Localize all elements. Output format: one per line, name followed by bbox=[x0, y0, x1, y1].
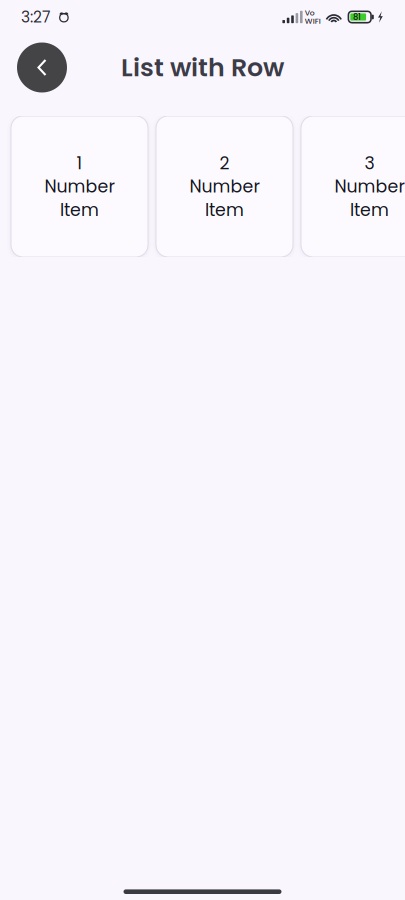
staticText: List with Row bbox=[121, 50, 284, 85]
staticText: WiFi bbox=[305, 16, 321, 27]
button[interactable]: Back bbox=[17, 42, 67, 92]
staticText: Item bbox=[350, 198, 389, 222]
staticText: Number bbox=[44, 174, 114, 199]
staticText: 3 bbox=[364, 151, 374, 175]
staticText: 81 bbox=[353, 11, 361, 23]
staticText: Number bbox=[189, 174, 259, 199]
staticText: Item bbox=[205, 198, 244, 222]
staticText: Number bbox=[334, 174, 404, 199]
staticText: 3:27 bbox=[21, 6, 50, 28]
staticText: 2 bbox=[219, 151, 229, 175]
button[interactable]: 3 bbox=[301, 116, 405, 257]
staticText: Vo bbox=[305, 7, 315, 18]
staticText: 1 bbox=[76, 151, 82, 175]
staticText: Item bbox=[60, 198, 99, 222]
button[interactable]: 2 bbox=[156, 116, 293, 257]
button[interactable]: 1 bbox=[11, 116, 148, 257]
